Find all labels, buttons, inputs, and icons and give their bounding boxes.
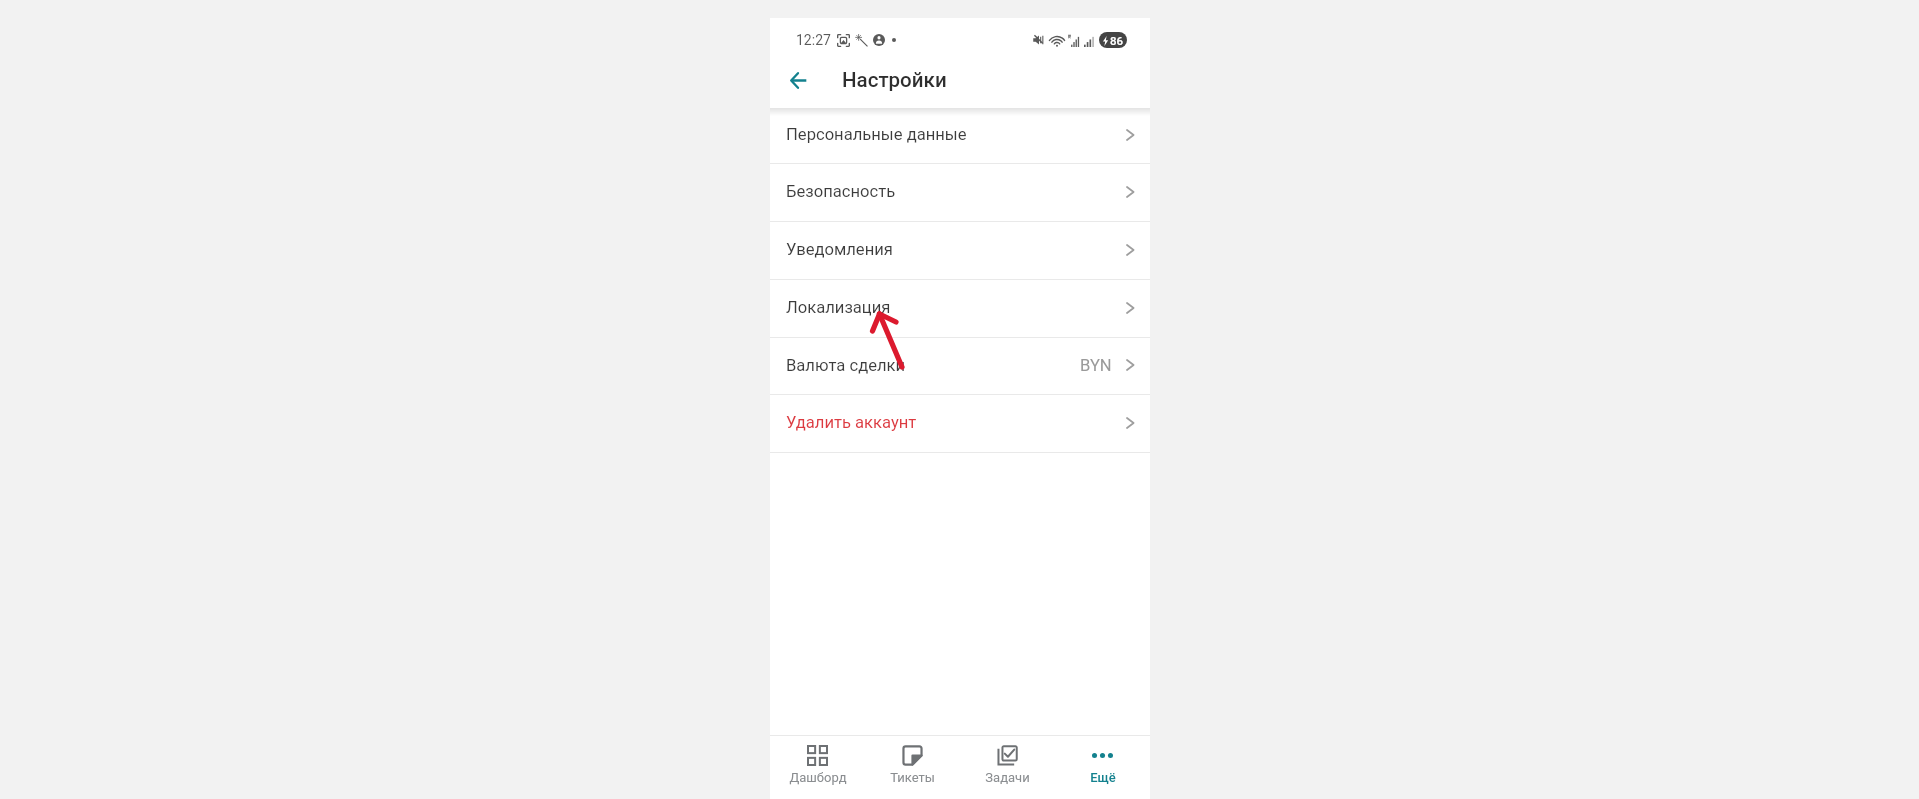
staticText: BYN <box>1080 356 1112 375</box>
staticText: Ещё <box>1090 770 1116 785</box>
button[interactable]: Назад <box>778 62 818 98</box>
staticText: Персональные данные <box>786 125 967 144</box>
button[interactable]: Ещё <box>1055 736 1150 799</box>
staticText: 86 <box>1110 34 1124 47</box>
button[interactable]: Задачи <box>960 736 1055 799</box>
button[interactable]: Безопасность <box>770 164 1150 222</box>
button[interactable]: Удалить аккаунт <box>770 395 1150 453</box>
staticText: Дашборд <box>789 770 847 785</box>
staticText: Удалить аккаунт <box>786 413 917 432</box>
button[interactable]: Валюта сделки <box>770 338 1150 395</box>
button[interactable]: Уведомления <box>770 222 1150 280</box>
staticText: Тикеты <box>890 770 935 785</box>
staticText: 12:27 <box>796 32 831 48</box>
staticText: Уведомления <box>786 240 893 259</box>
staticText: Безопасность <box>786 182 896 201</box>
staticText: Задачи <box>985 770 1030 785</box>
button[interactable]: Дашборд <box>770 736 865 799</box>
button[interactable]: Тикеты <box>865 736 960 799</box>
staticText: Локализация <box>786 298 891 317</box>
staticText: Валюта сделки <box>786 356 906 375</box>
staticText: Настройки <box>842 68 947 92</box>
button[interactable]: Локализация <box>770 280 1150 338</box>
button[interactable]: Персональные данные <box>770 108 1150 164</box>
